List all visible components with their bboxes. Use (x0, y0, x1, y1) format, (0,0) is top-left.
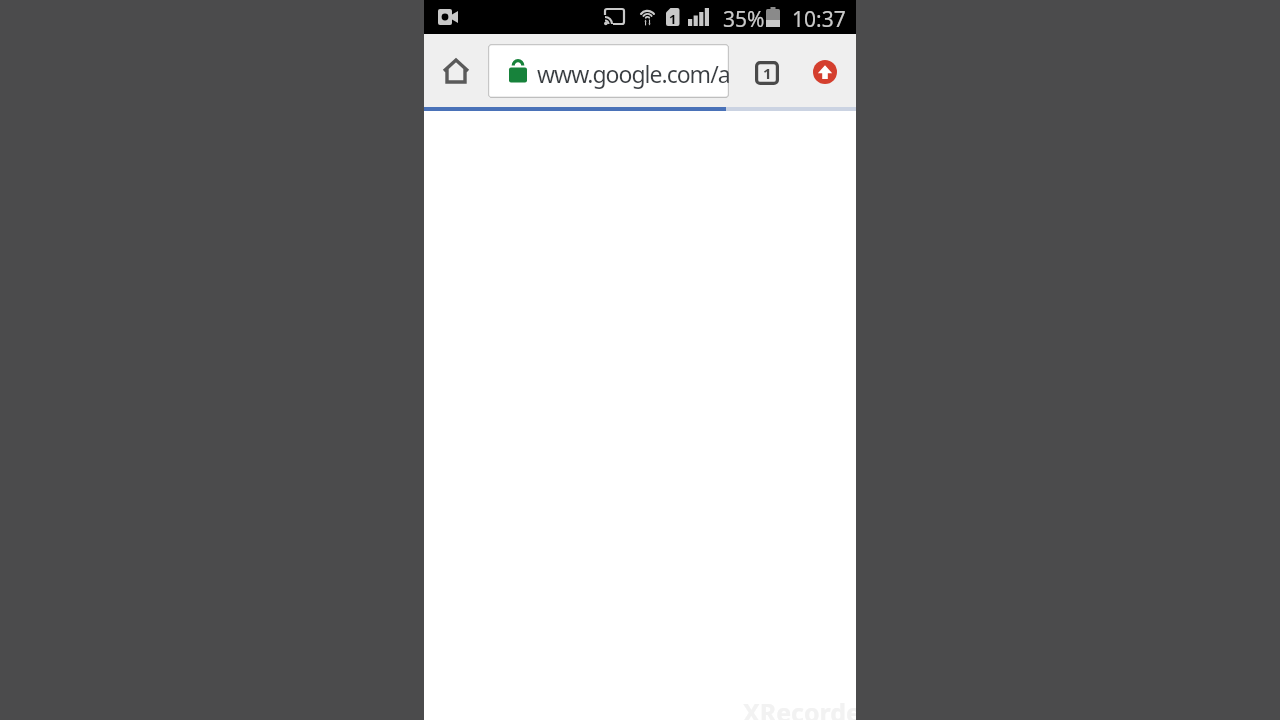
button[interactable]: 1 (749, 55, 785, 91)
button[interactable] (440, 56, 472, 86)
staticText: 1 (763, 63, 772, 83)
staticText: www.google.com/a (537, 58, 729, 89)
staticText: 1 (669, 10, 677, 28)
button[interactable] (813, 60, 837, 84)
button[interactable]: www.google.com/a (488, 44, 729, 98)
staticText: 35% (723, 5, 765, 34)
staticText: XRecorder (743, 695, 856, 720)
staticText: 10:37 (792, 5, 846, 34)
